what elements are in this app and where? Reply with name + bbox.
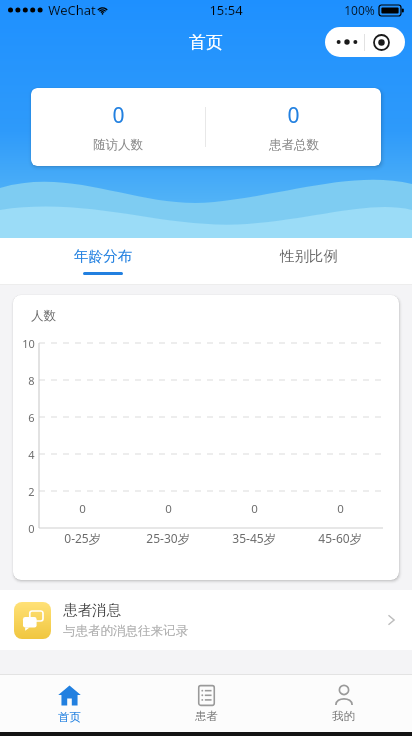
staticText: 首页 — [58, 710, 81, 724]
staticText: 100% — [344, 2, 375, 18]
staticText: 15:54 — [209, 1, 243, 19]
staticText: 随访人数 — [93, 137, 143, 153]
button[interactable]: 性别比例 — [206, 238, 412, 284]
staticText: 10 — [22, 336, 35, 350]
button[interactable]: 患者消息 — [0, 590, 412, 650]
staticText: 25-30岁 — [146, 530, 190, 546]
staticText: 性别比例 — [280, 247, 338, 265]
staticText: 0 — [28, 521, 35, 535]
button[interactable]: 我的 — [275, 675, 412, 732]
staticText: 患者总数 — [269, 137, 319, 153]
staticText: WeChat — [48, 1, 96, 19]
button[interactable]: 0 — [206, 101, 381, 153]
staticText: 35-45岁 — [232, 530, 276, 546]
staticText: 0-25岁 — [64, 530, 101, 546]
button[interactable]: 首页 — [0, 675, 138, 732]
staticText: 0 — [165, 501, 172, 517]
staticText: 0 — [337, 501, 344, 517]
staticText: 4 — [28, 447, 35, 461]
staticText: 6 — [28, 410, 35, 424]
staticText: 0 — [251, 501, 258, 517]
button[interactable]: 0 — [31, 101, 205, 153]
staticText: 患者消息 — [63, 601, 121, 619]
staticText: 人数 — [31, 308, 56, 324]
staticText: 0 — [112, 101, 125, 130]
staticText: 患者 — [195, 709, 218, 723]
staticText: 年龄分布 — [74, 247, 132, 265]
button[interactable]: 患者 — [138, 675, 275, 732]
staticText: 我的 — [332, 709, 355, 723]
button[interactable]: More options and close mini program — [325, 27, 405, 57]
button[interactable]: 年龄分布 — [0, 238, 206, 284]
staticText: 45-60岁 — [318, 530, 362, 546]
staticText: 0 — [287, 101, 300, 130]
staticText: 2 — [28, 484, 35, 498]
staticText: 8 — [28, 373, 35, 387]
staticText: 首页 — [189, 32, 223, 53]
staticText: 0 — [79, 501, 86, 517]
staticText: 与患者的消息往来记录 — [63, 623, 188, 639]
